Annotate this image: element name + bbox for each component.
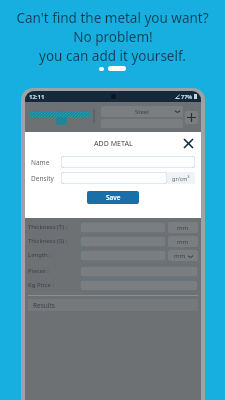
staticText: mm (177, 238, 189, 246)
staticText: mm (174, 252, 186, 260)
button[interactable]: mm (168, 236, 198, 247)
staticText: Name (31, 158, 61, 167)
staticText: No problem! (73, 28, 153, 46)
button[interactable] (61, 172, 167, 184)
staticText: Results (33, 301, 55, 310)
staticText: Kg Price : (28, 281, 80, 289)
button[interactable]: mm (168, 250, 198, 261)
staticText: you can add it yourself. (39, 47, 186, 65)
button[interactable]: mm (168, 222, 198, 233)
button[interactable]: Add metal (185, 111, 198, 124)
staticText: mm (177, 224, 189, 232)
button[interactable] (80, 236, 166, 247)
staticText: 77% (181, 93, 193, 100)
staticText: Thickness (T) : (28, 223, 80, 231)
staticText: 12:11 (29, 93, 45, 101)
staticText: ADD METAL (94, 139, 133, 149)
button[interactable]: Save (87, 191, 139, 204)
staticText: Density (31, 174, 61, 183)
button[interactable]: Close (182, 137, 195, 150)
staticText: Save (106, 193, 121, 202)
staticText: gr/cm³ (172, 175, 190, 182)
staticText: Thickness (S) : (28, 237, 80, 245)
staticText: Pieces : (28, 267, 80, 275)
button[interactable] (61, 156, 195, 168)
button[interactable] (80, 266, 198, 277)
button[interactable]: Steel (101, 106, 183, 117)
staticText: Steel (135, 108, 149, 116)
button[interactable] (80, 222, 166, 233)
staticText: Length : (28, 251, 80, 259)
staticText: Can't find the metal you want? (16, 9, 209, 27)
button[interactable] (80, 280, 198, 291)
button[interactable] (80, 250, 166, 261)
